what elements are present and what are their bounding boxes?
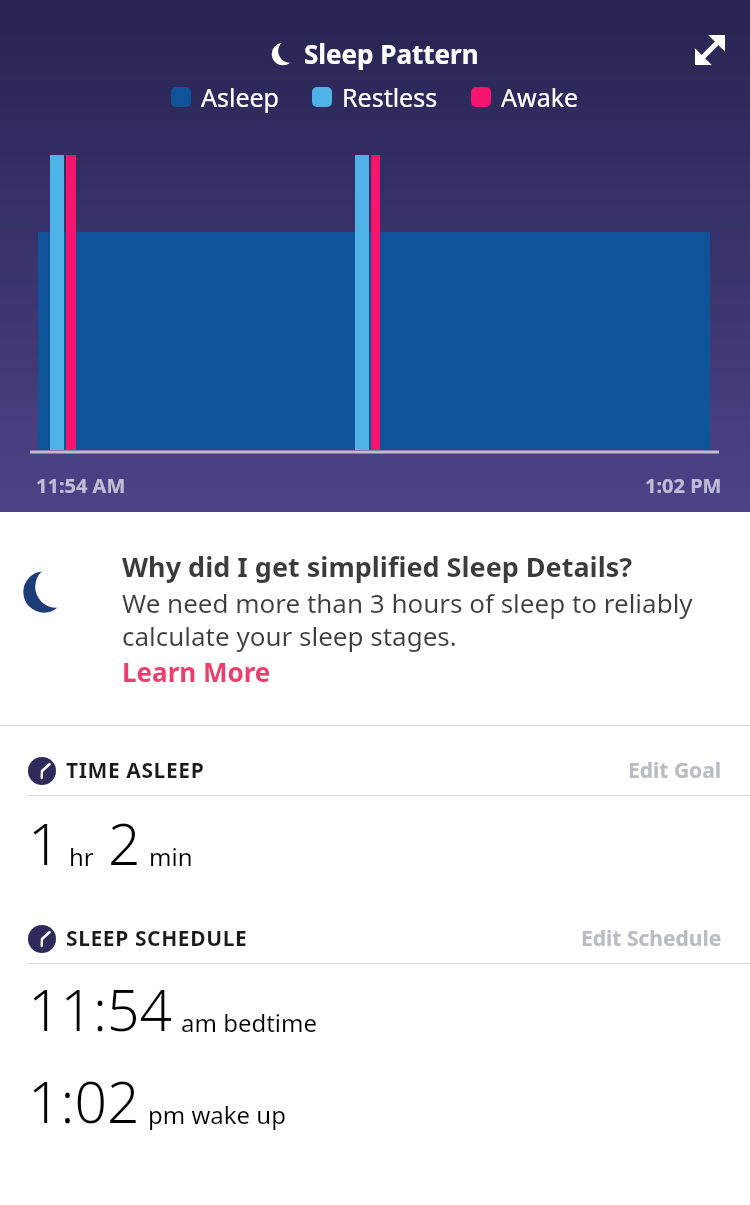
button[interactable]: Learn More: [122, 654, 271, 689]
staticText: 1:02 PM: [645, 472, 722, 499]
staticText: SLEEP SCHEDULE: [66, 924, 248, 953]
staticText: hr: [69, 840, 94, 873]
staticText: 11:54: [28, 970, 173, 1048]
staticText: 11:54 AM: [36, 472, 126, 499]
staticText: 1:02: [28, 1062, 140, 1140]
staticText: min: [149, 840, 193, 873]
staticText: We need more than 3 hours of sleep to re…: [122, 585, 726, 654]
staticText: Asleep: [201, 80, 279, 114]
staticText: pm wake up: [148, 1098, 286, 1131]
staticText: Restless: [342, 80, 438, 114]
button[interactable]: Edit Schedule: [581, 924, 722, 953]
staticText: 1: [28, 804, 61, 882]
staticText: Learn More: [122, 654, 271, 689]
staticText: Why did I get simplified Sleep Details?: [122, 548, 633, 585]
button[interactable]: Expand chart: [682, 22, 738, 78]
staticText: Edit Schedule: [581, 924, 722, 953]
staticText: Edit Goal: [628, 756, 722, 785]
staticText: 2: [108, 804, 141, 882]
staticText: TIME ASLEEP: [66, 756, 205, 785]
staticText: Sleep Pattern: [304, 36, 479, 71]
staticText: am bedtime: [181, 1006, 318, 1039]
staticText: Awake: [501, 80, 579, 114]
button[interactable]: Edit Goal: [628, 756, 722, 785]
